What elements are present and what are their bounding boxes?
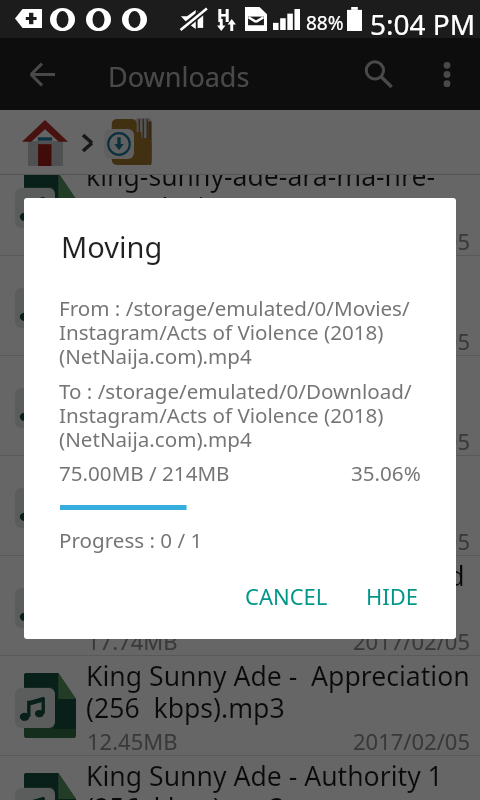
staticText: King Sunny Ade - Authority 1 (256 kbps).… [86, 758, 478, 800]
staticText: Progress : 0 / 1 [59, 526, 203, 554]
staticText: HIDE [366, 581, 419, 611]
staticText: 11.20MB [87, 326, 178, 356]
button[interactable]: More options [419, 38, 475, 110]
staticText: Downloads [108, 58, 250, 95]
button[interactable]: King Sunny Ade - Merciful God (256 kbps)… [0, 556, 480, 656]
staticText: King Sunny Ade - Ase (256 kbps).mp3 [86, 258, 478, 326]
button[interactable]: king-sunny-ade-ara-ma-nre- (tooxclusive.… [0, 156, 480, 256]
staticText: From : /storage/emulated/0/Movies/ Insta… [59, 294, 431, 370]
staticText: king-sunny-ade-ara-ma-nre- (tooxclusive.… [86, 158, 478, 226]
staticText: 12.45MB [87, 726, 178, 756]
staticText: 17.74MB [87, 626, 178, 656]
staticText: 88% [306, 10, 344, 36]
staticText: 2017/02/05 [353, 326, 471, 356]
staticText: King Sunny Ade - Appreciation (256 kbps)… [86, 658, 478, 726]
staticText: H [217, 4, 231, 27]
staticText: King Sunny Ade - Ase 2 (256 kbps).mp3 [86, 358, 478, 426]
button[interactable]: Search [351, 38, 407, 110]
button[interactable]: Home [18, 114, 70, 170]
button[interactable]: HIDE [357, 570, 427, 622]
staticText: King Sunny Ade - Ja Funmi (256 kbps).mp3 [86, 458, 478, 526]
staticText: 35.06% [351, 459, 421, 487]
button[interactable]: CANCEL [235, 570, 337, 622]
staticText: 14.52MB [87, 426, 178, 456]
staticText: 75.00MB / 214MB [59, 459, 230, 487]
staticText: Moving [61, 227, 163, 266]
button[interactable]: Back [6, 38, 78, 110]
staticText: CANCEL [245, 581, 328, 611]
staticText: King Sunny Ade - Merciful God (256 kbps)… [86, 558, 478, 626]
staticText: To : /storage/emulated/0/Download/ Insta… [59, 377, 431, 453]
button[interactable]: Download folder [102, 114, 154, 170]
button[interactable]: King Sunny Ade - Ja Funmi (256 kbps).mp3 [0, 456, 480, 556]
staticText: 2017/02/05 [353, 226, 471, 256]
staticText: 2017/02/05 [353, 426, 471, 456]
button[interactable]: King Sunny Ade - Authority 1 (256 kbps).… [0, 756, 480, 800]
staticText: 5:04 PM [370, 5, 476, 43]
staticText: 9.47MB [87, 226, 165, 256]
button[interactable]: King Sunny Ade - Ase 2 (256 kbps).mp3 [0, 356, 480, 456]
staticText: 2017/02/05 [353, 526, 471, 556]
staticText: 2017/02/05 [353, 726, 471, 756]
button[interactable]: King Sunny Ade - Appreciation (256 kbps)… [0, 656, 480, 756]
staticText: 15.30MB [87, 526, 178, 556]
staticText: 2017/02/05 [353, 626, 471, 656]
button[interactable]: King Sunny Ade - Ase (256 kbps).mp3 [0, 256, 480, 356]
